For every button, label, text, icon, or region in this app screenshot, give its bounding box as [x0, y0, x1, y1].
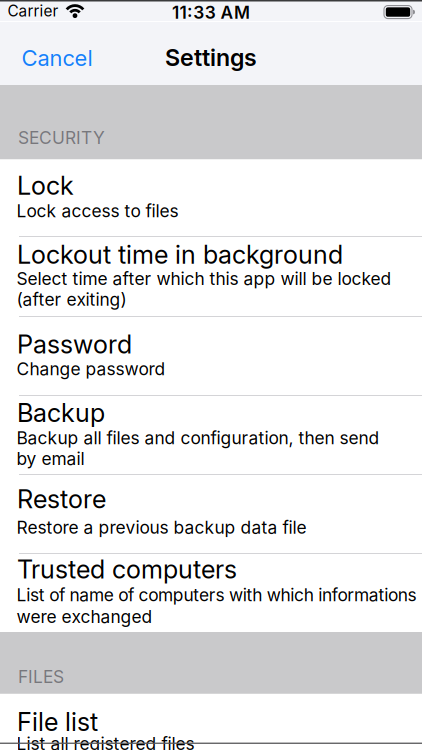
staticText: Select time after which this app will be… [16, 268, 391, 289]
staticText: Restore a previous backup data file [16, 517, 306, 538]
staticText: by email [16, 448, 84, 469]
staticText: Cancel [21, 45, 92, 71]
staticText: Change password [16, 358, 165, 379]
staticText: Backup [17, 397, 105, 428]
button[interactable]: Password [0, 317, 422, 396]
staticText: Carrier [7, 2, 58, 20]
staticText: were exchanged [16, 606, 152, 627]
staticText: 11:33 AM [172, 2, 250, 23]
button[interactable]: Backup [0, 396, 422, 475]
staticText: List of name of computers with which inf… [16, 584, 416, 605]
button[interactable]: Trusted computers [0, 554, 422, 632]
staticText: Settings [165, 43, 257, 72]
staticText: File list [17, 707, 98, 737]
staticText: Restore [17, 484, 106, 514]
button[interactable]: File list [0, 698, 422, 750]
staticText: FILES [18, 666, 64, 687]
staticText: Backup all files and configuration, then… [16, 427, 379, 448]
staticText: Password [17, 329, 132, 360]
staticText: Trusted computers [17, 554, 237, 585]
button[interactable]: Lockout time in background [0, 237, 422, 317]
staticText: Lockout time in background [17, 239, 343, 270]
staticText: (after exiting) [16, 289, 126, 310]
button[interactable]: Lock [0, 159, 422, 237]
button[interactable]: Cancel [0, 22, 92, 71]
button[interactable]: Restore [0, 475, 422, 554]
staticText: SECURITY [18, 127, 105, 148]
staticText: Lock access to files [16, 200, 178, 221]
staticText: List all registered files [16, 733, 194, 750]
staticText: Lock [17, 170, 74, 201]
